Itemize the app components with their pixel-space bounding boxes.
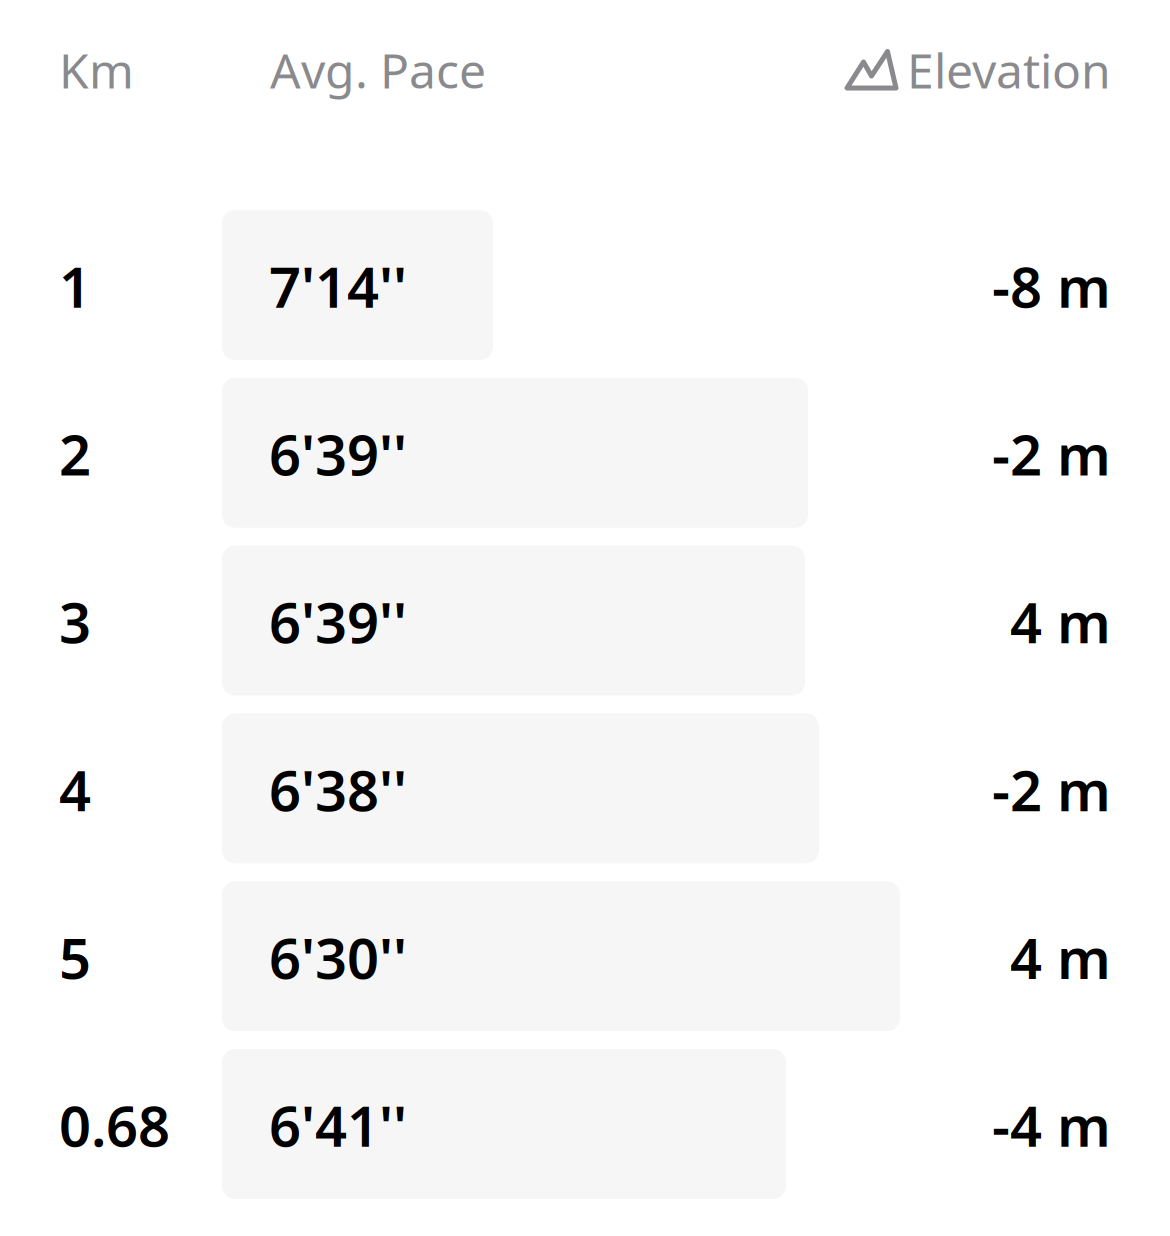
staticText: 6'41'' (269, 1088, 407, 1162)
button[interactable]: 0.68 (0, 1049, 1170, 1199)
staticText: -2 m (992, 752, 1111, 827)
staticText: 7'14'' (269, 249, 407, 323)
staticText: 6'39'' (269, 417, 407, 491)
button[interactable]: 5 (0, 881, 1170, 1031)
staticText: Avg. Pace (270, 38, 486, 102)
button[interactable]: 2 (0, 378, 1170, 528)
staticText: Km (59, 38, 134, 102)
button[interactable]: 1 (0, 210, 1170, 360)
staticText: 1 (59, 249, 91, 323)
staticText: 6'30'' (269, 920, 407, 994)
staticText: 4 (59, 752, 91, 827)
staticText: 6'39'' (269, 584, 407, 659)
staticText: 5 (59, 920, 91, 994)
staticText: 4 m (1010, 920, 1111, 994)
staticText: 4 m (1010, 584, 1111, 659)
staticText: -2 m (992, 417, 1111, 491)
staticText: 6'38'' (269, 752, 407, 827)
staticText: -4 m (992, 1088, 1111, 1162)
staticText: Elevation (907, 38, 1111, 102)
button[interactable]: 4 (0, 713, 1170, 863)
staticText: -8 m (992, 249, 1111, 323)
staticText: 0.68 (59, 1088, 170, 1162)
button[interactable]: 3 (0, 546, 1170, 696)
staticText: 2 (59, 417, 91, 491)
staticText: 3 (59, 584, 91, 659)
